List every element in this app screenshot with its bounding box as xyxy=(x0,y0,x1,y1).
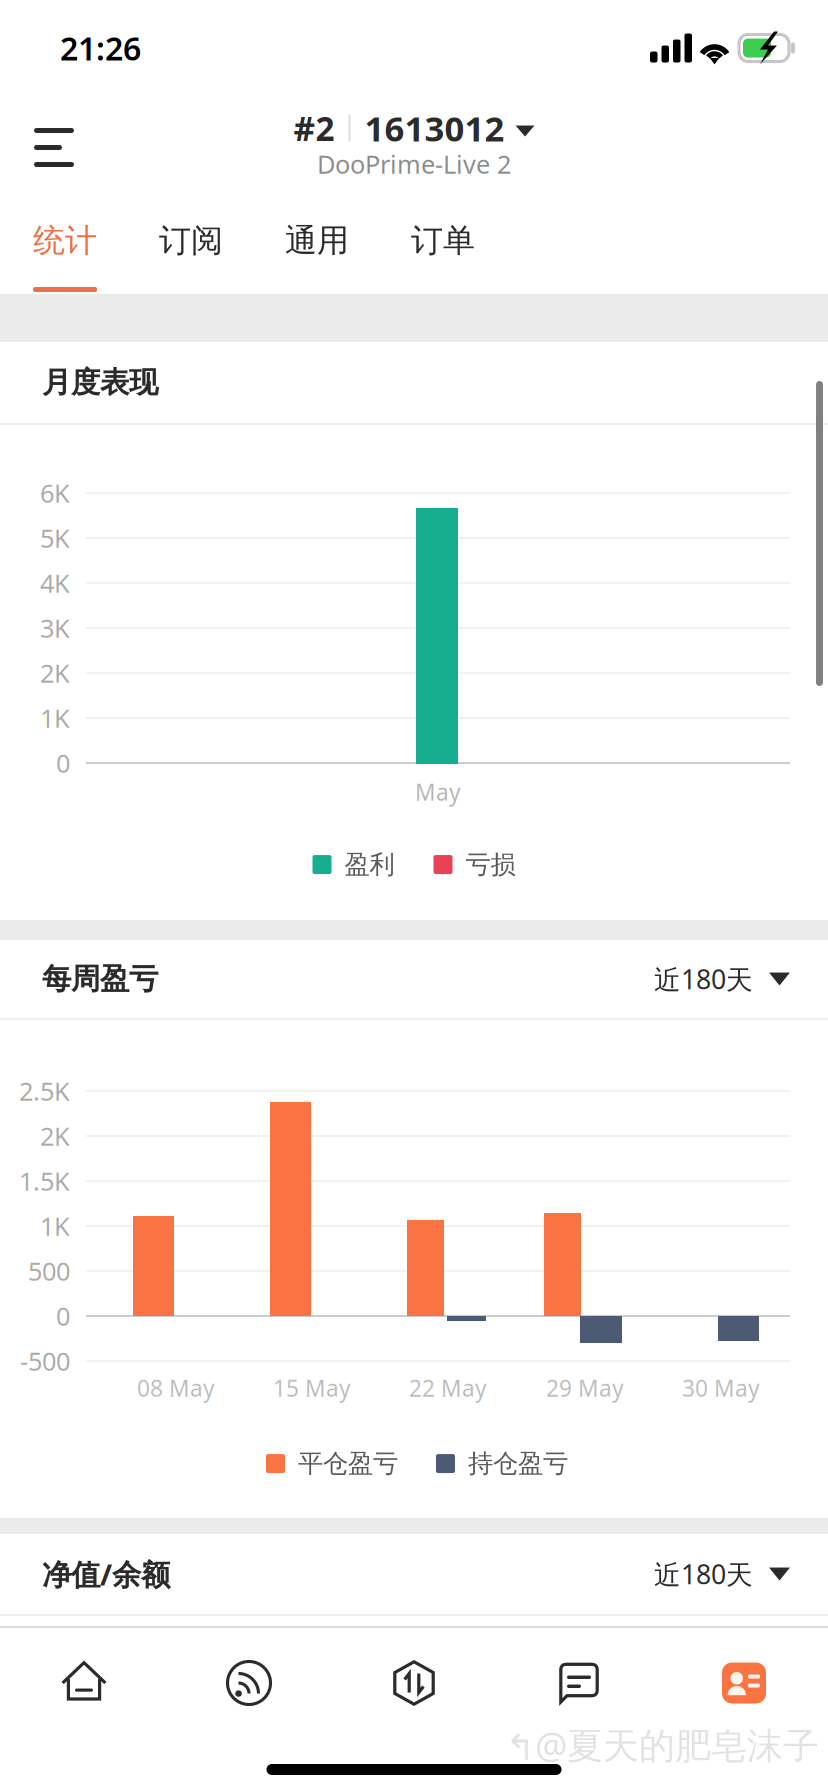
staticText: 0 xyxy=(56,1299,70,1333)
staticText: 1K xyxy=(40,1209,70,1243)
staticText: 30 May xyxy=(682,1373,760,1403)
staticText: May xyxy=(415,777,461,807)
staticText: 订单 xyxy=(411,221,475,260)
staticText: 29 May xyxy=(546,1373,624,1403)
button[interactable]: Messages xyxy=(496,1628,661,1738)
staticText: 近180天 xyxy=(654,1556,753,1592)
staticText: -500 xyxy=(20,1344,70,1378)
staticText: 持仓盈亏 xyxy=(468,1448,568,1479)
staticText: 净值/余额 xyxy=(42,1554,170,1593)
staticText: 500 xyxy=(28,1254,70,1288)
staticText: ↰@夏天的肥皂沫子 xyxy=(505,1721,819,1769)
staticText: 2.5K xyxy=(19,1074,70,1108)
staticText: 亏损 xyxy=(465,849,515,880)
staticText: 3K xyxy=(40,611,70,645)
staticText: 08 May xyxy=(137,1373,215,1403)
button[interactable]: Menu xyxy=(0,96,100,184)
staticText: 6K xyxy=(40,476,70,510)
staticText: 2K xyxy=(40,1119,70,1153)
staticText: 1613012 xyxy=(364,105,504,151)
staticText: 1K xyxy=(40,701,70,735)
staticText: 每周盈亏 xyxy=(42,961,158,997)
button[interactable]: 订阅 xyxy=(128,197,254,293)
button[interactable]: Home xyxy=(1,1628,166,1738)
button[interactable]: 通用 xyxy=(254,197,380,293)
button[interactable]: Trade xyxy=(331,1628,496,1738)
staticText: 订阅 xyxy=(159,221,223,260)
staticText: 月度表现 xyxy=(42,364,158,400)
button[interactable]: Signals xyxy=(166,1628,331,1738)
button[interactable]: 统计 xyxy=(2,197,128,293)
staticText: 近180天 xyxy=(654,961,753,997)
staticText: 0 xyxy=(56,746,70,780)
staticText: 平仓盈亏 xyxy=(298,1448,398,1479)
staticText: 5K xyxy=(40,521,70,555)
staticText: 盈利 xyxy=(344,849,394,880)
staticText: 4K xyxy=(40,566,70,600)
staticText: 15 May xyxy=(273,1373,351,1403)
staticText: 21:26 xyxy=(60,27,141,69)
button[interactable]: 近180天 xyxy=(654,947,790,1011)
button[interactable]: 订单 xyxy=(380,197,506,293)
staticText: 1.5K xyxy=(19,1164,70,1198)
staticText: #2 xyxy=(293,106,334,150)
staticText: 22 May xyxy=(409,1373,487,1403)
staticText: DooPrime-Live 2 xyxy=(317,147,511,181)
staticText: 统计 xyxy=(33,221,97,260)
button[interactable]: 近180天 xyxy=(654,1542,790,1606)
button[interactable]: Profile xyxy=(661,1628,826,1738)
staticText: 通用 xyxy=(285,221,349,260)
staticText: 2K xyxy=(40,656,70,690)
